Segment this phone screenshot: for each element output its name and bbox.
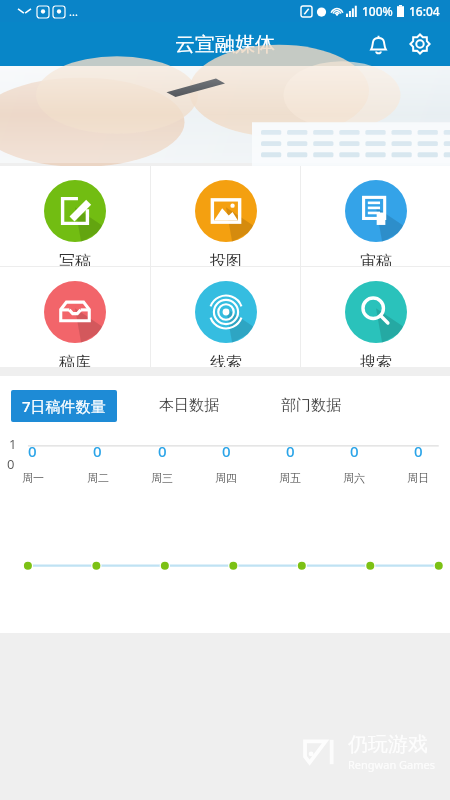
staticText: 本日数据 (159, 396, 219, 415)
button[interactable]: 7日稿件数量 (11, 390, 117, 422)
staticText: Rengwan Games (348, 757, 436, 772)
button[interactable]: Notifications (360, 26, 396, 62)
button[interactable]: 稿库 Archive (0, 267, 150, 367)
staticText: 写稿 (59, 252, 91, 266)
staticText: 0 (414, 441, 423, 461)
staticText: 周四 (215, 471, 237, 485)
staticText: 周三 (151, 471, 173, 485)
button[interactable]: 本日数据 (149, 390, 229, 421)
button[interactable]: 部门数据 (271, 390, 351, 421)
staticText: 7日稿件数量 (22, 396, 106, 416)
staticText: 稿库 (59, 353, 91, 367)
button[interactable]: 投图 Submit image (151, 166, 300, 266)
staticText: 投图 (210, 252, 242, 266)
button[interactable]: 审稿 Review (301, 166, 450, 266)
button[interactable]: 线索 Clues (151, 267, 300, 367)
button[interactable]: 写稿 Write (0, 166, 150, 266)
staticText: 1 (9, 435, 17, 453)
staticText: 仍玩游戏 (348, 732, 428, 757)
staticText: 云宣融媒体 (175, 32, 275, 57)
staticText: 线索 (210, 353, 242, 367)
staticText: 搜索 (360, 353, 392, 367)
staticText: 周六 (343, 471, 365, 485)
staticText: 部门数据 (281, 396, 341, 415)
staticText: 0 (28, 441, 37, 461)
staticText: 周日 (407, 471, 429, 485)
button[interactable]: Settings (402, 26, 438, 62)
staticText: ... (69, 4, 78, 19)
staticText: 审稿 (360, 252, 392, 266)
staticText: 周一 (22, 471, 44, 485)
staticText: 0 (286, 441, 295, 461)
staticText: 16:04 (409, 3, 440, 19)
staticText: 0 (222, 441, 231, 461)
button[interactable]: 搜索 Search (301, 267, 450, 367)
staticText: 0 (350, 441, 359, 461)
staticText: 0 (158, 441, 167, 461)
staticText: 0 (7, 455, 15, 473)
staticText: 0 (93, 441, 102, 461)
staticText: 周二 (87, 471, 109, 485)
staticText: 100% (362, 3, 393, 19)
staticText: 周五 (279, 471, 301, 485)
